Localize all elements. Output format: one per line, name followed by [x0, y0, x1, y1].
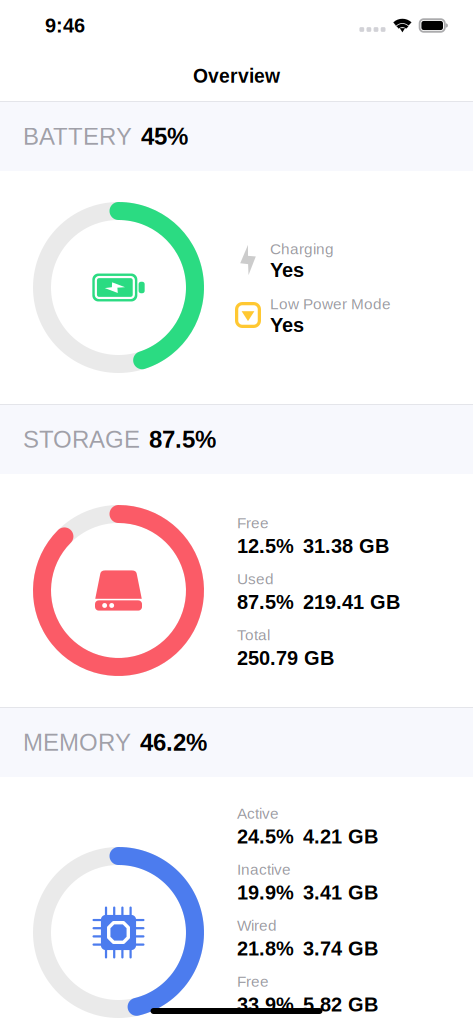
staticText: BATTERY — [23, 123, 132, 150]
staticText: Active — [237, 805, 279, 822]
staticText: 21.8% — [237, 937, 294, 960]
staticText: Free — [237, 973, 269, 990]
staticText: 250.79 GB — [237, 647, 334, 669]
staticText: Yes — [270, 259, 304, 281]
staticText: Yes — [270, 314, 304, 336]
staticText: Wired — [237, 917, 277, 934]
staticText: 87.5% — [237, 591, 294, 613]
staticText: 87.5% — [149, 426, 216, 453]
staticText: 46.2% — [140, 729, 207, 756]
staticText: 4.21 GB — [303, 825, 378, 848]
staticText: 219.41 GB — [303, 591, 400, 613]
staticText: Total — [237, 626, 270, 643]
staticText: 3.74 GB — [303, 937, 378, 960]
staticText: Free — [237, 514, 269, 531]
staticText: 9:46 — [45, 14, 85, 37]
staticText: Used — [237, 570, 274, 587]
staticText: Charging — [270, 240, 334, 257]
staticText: MEMORY — [23, 729, 131, 756]
staticText: 5.82 GB — [303, 993, 378, 1016]
staticText: 33.9% — [237, 993, 294, 1016]
staticText: Inactive — [237, 861, 291, 878]
staticText: 19.9% — [237, 881, 294, 904]
staticText: 24.5% — [237, 825, 294, 848]
staticText: Low Power Mode — [270, 295, 391, 312]
staticText: 45% — [141, 123, 188, 150]
staticText: 31.38 GB — [303, 535, 389, 557]
staticText: 12.5% — [237, 535, 294, 557]
staticText: 3.41 GB — [303, 881, 378, 904]
button[interactable]: Overview — [0, 51, 473, 101]
staticText: Overview — [193, 65, 280, 87]
staticText: STORAGE — [23, 426, 140, 453]
